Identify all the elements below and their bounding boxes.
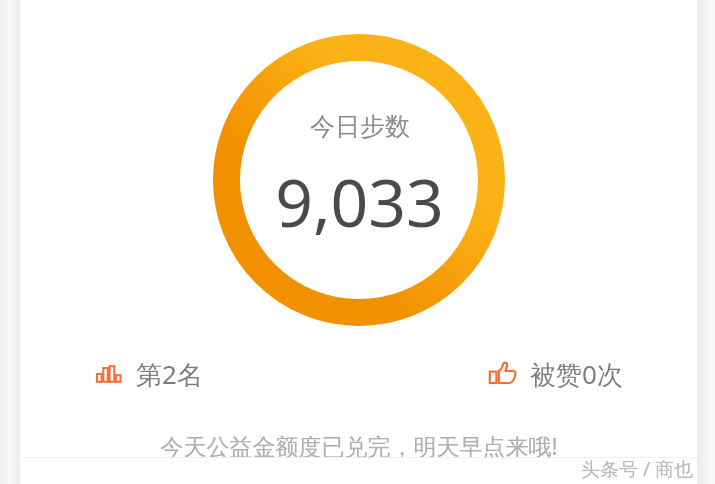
other: Ranking [94, 359, 124, 389]
staticText: 被赞0次 [530, 356, 623, 392]
button[interactable]: Ranking [92, 352, 205, 396]
other: Likes [488, 359, 518, 389]
staticText: 今天公益金额度已兑完，明天早点来哦! [160, 430, 558, 461]
staticText: 今日步数 [310, 111, 410, 142]
button[interactable]: Likes [486, 352, 625, 396]
staticText: 第2名 [136, 356, 203, 392]
staticText: 头条号 / 商也 [581, 456, 693, 482]
staticText: 9,033 [275, 156, 444, 246]
button[interactable]: 今日步数 [213, 34, 505, 326]
